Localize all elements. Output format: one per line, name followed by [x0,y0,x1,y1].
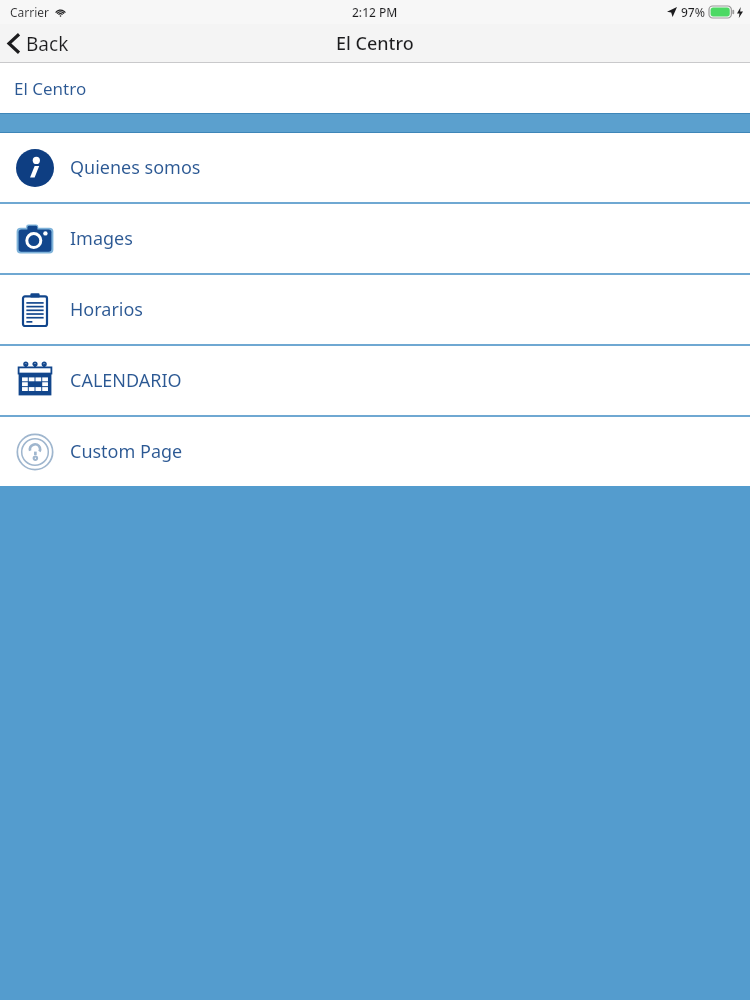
button[interactable]: Horarios [0,275,750,344]
staticText: Horarios [70,297,143,322]
staticText: 97% [681,4,705,20]
staticText: Images [70,226,133,251]
staticText: Custom Page [70,439,183,464]
button[interactable]: CALENDARIO [0,346,750,415]
staticText: Quienes somos [70,155,201,180]
staticText: El Centro [14,77,87,100]
staticText: Back [26,31,69,57]
button[interactable]: Quienes somos [0,133,750,202]
staticText: CALENDARIO [70,368,182,393]
button[interactable]: Back [0,24,81,63]
button[interactable]: El Centro [0,63,750,113]
staticText: 2:12 PM [352,4,398,20]
staticText: El Centro [336,31,414,56]
staticText: Carrier [10,4,50,20]
button[interactable]: Custom Page [0,417,750,486]
button[interactable]: Images [0,204,750,273]
